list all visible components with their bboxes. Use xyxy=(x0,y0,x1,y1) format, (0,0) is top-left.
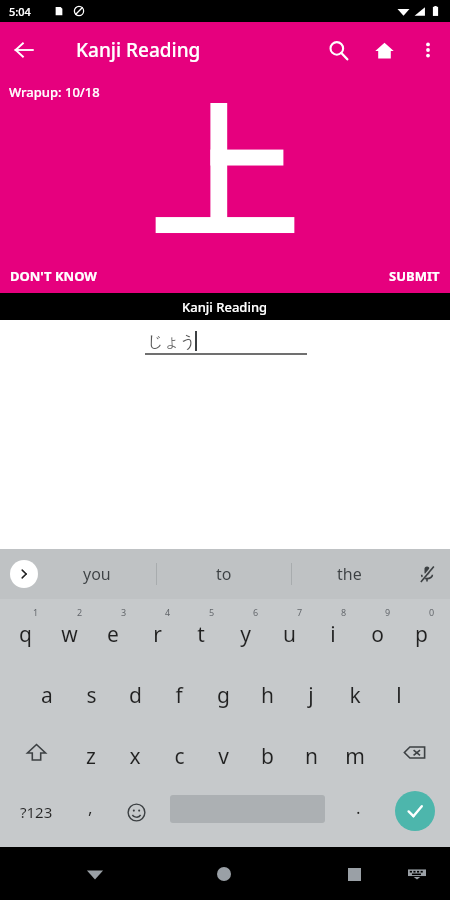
button[interactable]: j xyxy=(291,665,331,717)
button[interactable]: f xyxy=(159,665,199,717)
button[interactable]: g xyxy=(203,665,243,717)
staticText: 2 xyxy=(77,606,83,618)
staticText: z xyxy=(86,742,96,771)
button[interactable]: Search xyxy=(314,26,362,74)
staticText: m xyxy=(345,742,365,771)
staticText: p xyxy=(415,620,428,649)
button[interactable]: Recent apps xyxy=(334,854,374,894)
staticText: u xyxy=(283,620,296,649)
staticText: t xyxy=(197,620,205,649)
staticText: 8 xyxy=(341,606,347,618)
button[interactable]: n xyxy=(291,726,331,778)
staticText: 5 xyxy=(209,606,215,618)
button[interactable]: Back xyxy=(0,26,48,74)
button[interactable]: h xyxy=(247,665,287,717)
staticText: Wrapup: 10/18 xyxy=(9,83,100,101)
staticText: o xyxy=(371,620,384,649)
button[interactable]: r xyxy=(137,604,177,656)
button[interactable]: i xyxy=(313,604,353,656)
button[interactable]: Emoji xyxy=(118,789,154,835)
button[interactable]: you xyxy=(57,549,137,599)
button[interactable]: v xyxy=(203,726,243,778)
button[interactable]: ?123 xyxy=(8,789,64,835)
staticText: n xyxy=(305,742,318,771)
button[interactable]: u xyxy=(269,604,309,656)
button[interactable]: e xyxy=(93,604,133,656)
staticText: x xyxy=(129,742,141,771)
button[interactable]: , xyxy=(72,789,108,835)
button[interactable]: c xyxy=(159,726,199,778)
staticText: j xyxy=(308,681,314,710)
staticText: DON'T KNOW xyxy=(10,267,97,285)
staticText: SUBMIT xyxy=(389,267,440,285)
staticText: 9 xyxy=(385,606,391,618)
staticText: 6 xyxy=(253,606,259,618)
button[interactable]: t xyxy=(181,604,221,656)
staticText: r xyxy=(153,620,162,649)
button[interactable]: b xyxy=(247,726,287,778)
staticText: q xyxy=(19,620,32,649)
button[interactable]: Voice input xyxy=(412,559,442,589)
staticText: h xyxy=(261,681,274,710)
button[interactable]: q xyxy=(5,604,45,656)
staticText: じょう xyxy=(147,332,197,352)
staticText: d xyxy=(129,681,142,710)
button[interactable]: Backspace xyxy=(394,726,434,778)
staticText: s xyxy=(86,681,97,710)
button[interactable]: Home xyxy=(204,854,244,894)
button[interactable]: Enter xyxy=(395,791,435,831)
staticText: to xyxy=(216,563,232,585)
button[interactable]: l xyxy=(379,665,419,717)
button[interactable]: Switch keyboard xyxy=(399,856,435,892)
staticText: you xyxy=(83,563,111,585)
button[interactable]: z xyxy=(71,726,111,778)
staticText: ?123 xyxy=(20,802,53,822)
button[interactable]: SUBMIT xyxy=(389,267,440,285)
staticText: Kanji Reading xyxy=(76,37,201,63)
staticText: w xyxy=(61,620,78,649)
staticText: i xyxy=(330,620,336,649)
staticText: g xyxy=(217,681,230,710)
button[interactable]: m xyxy=(335,726,375,778)
staticText: , xyxy=(88,796,93,819)
staticText: 0 xyxy=(429,606,435,618)
button[interactable]: y xyxy=(225,604,265,656)
staticText: c xyxy=(174,742,185,771)
button[interactable]: o xyxy=(357,604,397,656)
staticText: 7 xyxy=(297,606,303,618)
staticText: 4 xyxy=(165,606,171,618)
button[interactable]: Home xyxy=(362,28,406,72)
button[interactable]: More options xyxy=(406,28,450,72)
staticText: e xyxy=(107,620,119,649)
staticText: y xyxy=(240,620,251,649)
staticText: v xyxy=(218,742,229,771)
button[interactable]: Back xyxy=(75,854,115,894)
button[interactable]: . xyxy=(340,789,376,835)
button[interactable]: d xyxy=(115,665,155,717)
button[interactable]: p xyxy=(401,604,441,656)
staticText: 5:04 xyxy=(9,4,31,19)
button[interactable]: DON'T KNOW xyxy=(10,267,97,285)
staticText: f xyxy=(175,681,183,710)
button[interactable]: k xyxy=(335,665,375,717)
staticText: . xyxy=(356,796,361,819)
staticText: l xyxy=(396,681,402,710)
staticText: 1 xyxy=(33,606,39,618)
staticText: Kanji Reading xyxy=(182,298,268,316)
staticText: 3 xyxy=(121,606,127,618)
staticText: k xyxy=(349,681,361,710)
staticText: b xyxy=(261,742,274,771)
button[interactable]: Shift xyxy=(16,726,56,778)
staticText: a xyxy=(41,681,53,710)
button[interactable]: w xyxy=(49,604,89,656)
button[interactable]: to xyxy=(184,549,264,599)
staticText: the xyxy=(337,563,362,585)
button[interactable]: x xyxy=(115,726,155,778)
button[interactable]: a xyxy=(27,665,67,717)
button[interactable]: Expand suggestions xyxy=(10,560,38,588)
button[interactable]: the xyxy=(309,549,389,599)
button[interactable]: s xyxy=(71,665,111,717)
